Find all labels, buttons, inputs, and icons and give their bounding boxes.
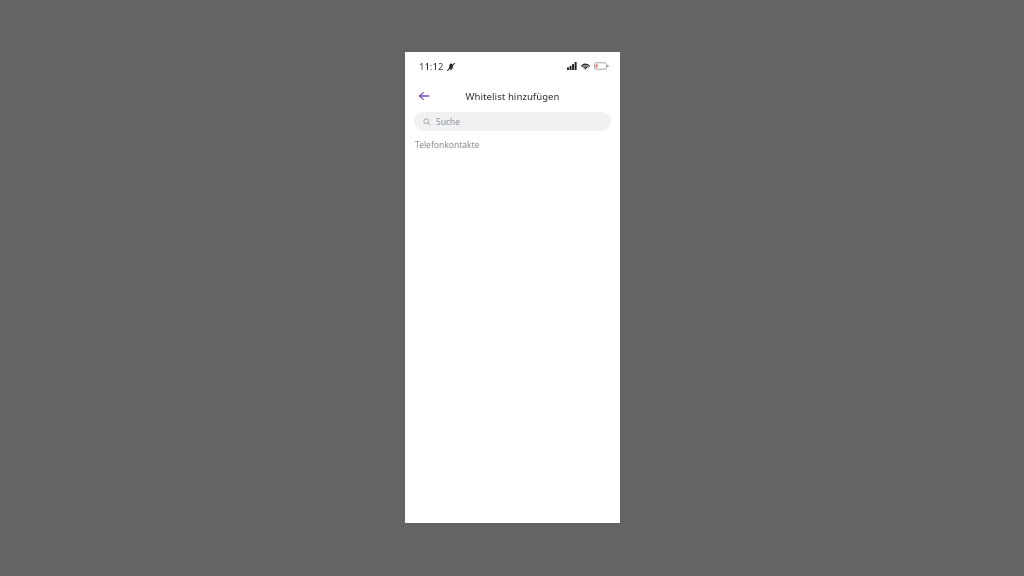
staticText: Whitelist hinzufügen	[405, 90, 620, 103]
staticText: 11:12	[419, 60, 444, 73]
staticText: Suche	[436, 116, 461, 128]
staticText: Telefonkontakte	[415, 139, 480, 151]
button[interactable]: Zurück	[411, 83, 437, 109]
button[interactable]: Suche	[414, 112, 611, 131]
